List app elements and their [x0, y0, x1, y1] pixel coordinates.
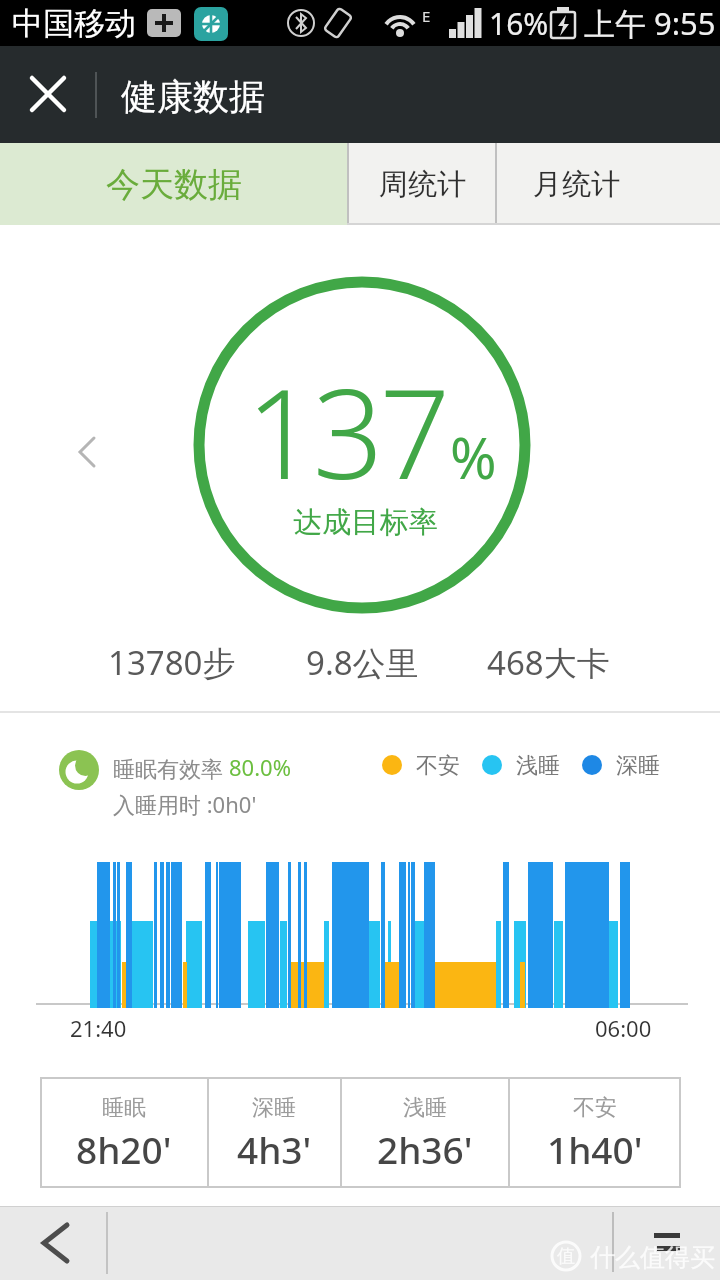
staticText: 06:00 — [595, 1013, 652, 1041]
staticText: 浅睡 — [403, 1094, 447, 1122]
staticText: 入睡用时 :0h0' — [113, 789, 257, 817]
staticText: 不安 — [416, 752, 460, 780]
staticText: 月统计 — [533, 166, 620, 203]
staticText: 1h40' — [547, 1124, 643, 1174]
staticText: 深睡 — [252, 1094, 296, 1122]
staticText: 9.8公里 — [306, 640, 419, 684]
staticText: 睡眠 — [102, 1094, 146, 1122]
button[interactable] — [20, 1212, 90, 1274]
staticText: 468大卡 — [487, 640, 610, 684]
staticText: 不安 — [573, 1094, 617, 1122]
staticText: 21:40 — [70, 1013, 127, 1041]
staticText: E — [422, 6, 431, 26]
staticText: 13780步 — [108, 640, 236, 684]
button[interactable]: 周统计 — [349, 143, 495, 225]
staticText: 上午 9:55 — [584, 2, 716, 44]
staticText: 今天数据 — [106, 163, 242, 206]
staticText: 值 — [557, 1245, 575, 1268]
staticText: 4h3' — [237, 1124, 312, 1174]
button[interactable]: 今天数据 — [0, 143, 347, 225]
staticText: 深睡 — [616, 752, 660, 780]
staticText: 睡眠有效率 — [113, 753, 229, 783]
staticText: 浅睡 — [516, 752, 560, 780]
staticText: % — [450, 419, 497, 495]
staticText: 周统计 — [379, 166, 466, 203]
staticText: 2h36' — [377, 1124, 473, 1174]
button[interactable] — [58, 416, 116, 488]
staticText: 什么值得买 — [590, 1242, 715, 1273]
button[interactable]: 月统计 — [497, 143, 720, 225]
staticText: 达成目标率 — [293, 504, 438, 540]
button[interactable] — [18, 64, 78, 124]
staticText: 137 — [246, 346, 447, 515]
staticText: 健康数据 — [121, 74, 265, 118]
button[interactable] — [636, 1218, 700, 1268]
staticText: 80.0% — [229, 752, 291, 782]
staticText: 16% — [489, 3, 549, 43]
staticText: 中国移动 — [12, 4, 136, 43]
staticText: 8h20' — [76, 1124, 172, 1174]
